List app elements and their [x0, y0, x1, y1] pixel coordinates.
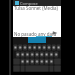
staticText: No pasado any data — [14, 31, 57, 37]
staticText: Tulsa Sonnet (Media) — [14, 5, 58, 11]
button[interactable]: Keyboard — [13, 37, 61, 72]
staticText: Compose — [20, 1, 38, 6]
button[interactable]: Send — [52, 30, 58, 36]
